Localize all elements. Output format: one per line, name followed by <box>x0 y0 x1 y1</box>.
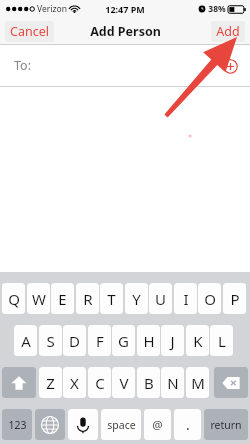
staticText: V <box>119 373 129 393</box>
staticText: Y <box>132 289 141 309</box>
staticText: F <box>96 331 104 351</box>
button[interactable]: H <box>137 325 160 356</box>
staticText: S <box>46 331 55 351</box>
staticText: return <box>210 418 242 432</box>
staticText: A <box>21 331 31 351</box>
button[interactable]: R <box>76 283 99 314</box>
staticText: D <box>69 331 80 351</box>
staticText: . <box>186 415 190 434</box>
button[interactable]: Dictation <box>68 409 98 440</box>
button[interactable]: @ <box>144 409 171 440</box>
button[interactable]: Cancel <box>5 21 54 42</box>
button[interactable]: N <box>161 367 184 398</box>
staticText: P <box>230 289 240 309</box>
button[interactable]: C <box>88 367 111 398</box>
button[interactable]: J <box>161 325 184 356</box>
staticText: H <box>143 331 155 351</box>
button[interactable]: return <box>204 409 248 440</box>
button[interactable]: U <box>149 283 172 314</box>
button[interactable]: 123 <box>2 409 32 440</box>
staticText: U <box>155 289 166 309</box>
staticText: L <box>218 331 226 351</box>
button[interactable]: Add contact <box>220 56 240 76</box>
button[interactable]: M <box>186 367 209 398</box>
button[interactable]: F <box>88 325 111 356</box>
button[interactable]: K <box>186 325 209 356</box>
button[interactable]: W <box>27 283 50 314</box>
staticText: E <box>58 289 67 309</box>
staticText: @ <box>152 417 163 433</box>
staticText: I <box>183 289 189 309</box>
staticText: Z <box>46 373 55 393</box>
button[interactable]: . <box>174 409 201 440</box>
staticText: space <box>107 418 136 432</box>
button[interactable]: L <box>210 325 233 356</box>
staticText: 12:47 PM <box>105 3 145 15</box>
staticText: Add <box>216 23 240 40</box>
button[interactable]: G <box>112 325 135 356</box>
button[interactable]: V <box>112 367 135 398</box>
staticText: 123 <box>8 418 27 432</box>
button[interactable]: Y <box>125 283 148 314</box>
button[interactable]: Switch keyboard <box>35 409 65 440</box>
button[interactable]: Shift <box>2 367 36 398</box>
staticText: To: <box>14 57 31 74</box>
button[interactable]: Add <box>211 21 245 42</box>
button[interactable]: D <box>63 325 86 356</box>
button[interactable]: Q <box>2 283 25 314</box>
button[interactable]: O <box>198 283 221 314</box>
button[interactable]: Z <box>39 367 62 398</box>
button[interactable]: Backspace <box>214 367 248 398</box>
button[interactable]: S <box>39 325 62 356</box>
staticText: O <box>204 289 216 309</box>
button[interactable]: space <box>101 409 141 440</box>
button[interactable]: T <box>100 283 123 314</box>
button[interactable]: X <box>63 367 86 398</box>
staticText: B <box>144 373 154 393</box>
staticText: J <box>170 331 175 351</box>
button[interactable]: E <box>51 283 74 314</box>
button[interactable]: B <box>137 367 160 398</box>
staticText: G <box>118 331 129 351</box>
staticText: Add Person <box>90 23 161 40</box>
button[interactable]: To: <box>0 45 250 86</box>
staticText: Q <box>8 289 20 309</box>
staticText: M <box>191 373 205 393</box>
button[interactable]: I <box>174 283 197 314</box>
staticText: N <box>167 373 179 393</box>
staticText: 38% <box>208 3 226 15</box>
staticText: K <box>193 331 203 351</box>
staticText: W <box>32 289 46 309</box>
staticText: R <box>83 289 93 309</box>
staticText: T <box>107 289 116 309</box>
button[interactable]: A <box>14 325 37 356</box>
staticText: Cancel <box>10 23 49 40</box>
staticText: C <box>95 373 105 393</box>
staticText: X <box>70 373 79 393</box>
button[interactable]: P <box>223 283 246 314</box>
staticText: Verizon <box>37 3 67 15</box>
